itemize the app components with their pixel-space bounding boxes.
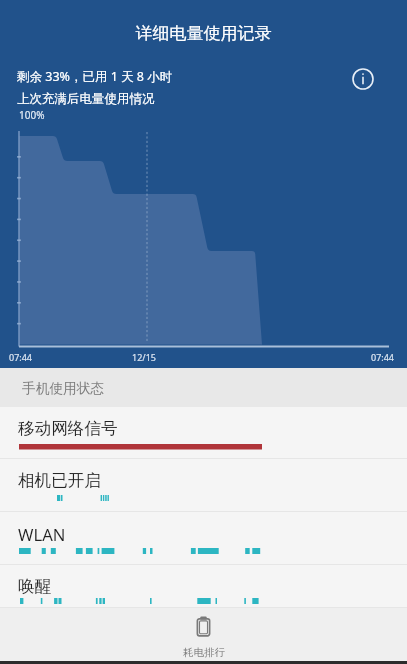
button[interactable]: WLAN (0, 512, 407, 564)
staticText: 上次充满后电量使用情况 (17, 91, 155, 107)
button[interactable]: 移动网络信号 (0, 407, 407, 458)
staticText: 移动网络信号 (18, 418, 118, 439)
staticText: 相机已开启 (18, 470, 101, 491)
button[interactable]: 耗电排行 (0, 608, 407, 661)
staticText: 耗电排行 (183, 646, 225, 659)
staticText: 07:44 (9, 351, 33, 363)
staticText: 详细电量使用记录 (0, 23, 407, 44)
staticText: 唤醒 (18, 576, 52, 597)
staticText: 100% (19, 108, 45, 122)
staticText: WLAN (18, 523, 66, 546)
staticText: 07:44 (371, 351, 395, 363)
staticText: 剩余 33%，已用 1 天 8 小时 (17, 68, 173, 85)
staticText: 12/15 (132, 351, 156, 363)
button[interactable]: 相机已开启 (0, 459, 407, 511)
button[interactable]: 唤醒 (0, 565, 407, 607)
button[interactable]: Info (347, 63, 379, 95)
staticText: 手机使用状态 (22, 380, 105, 397)
